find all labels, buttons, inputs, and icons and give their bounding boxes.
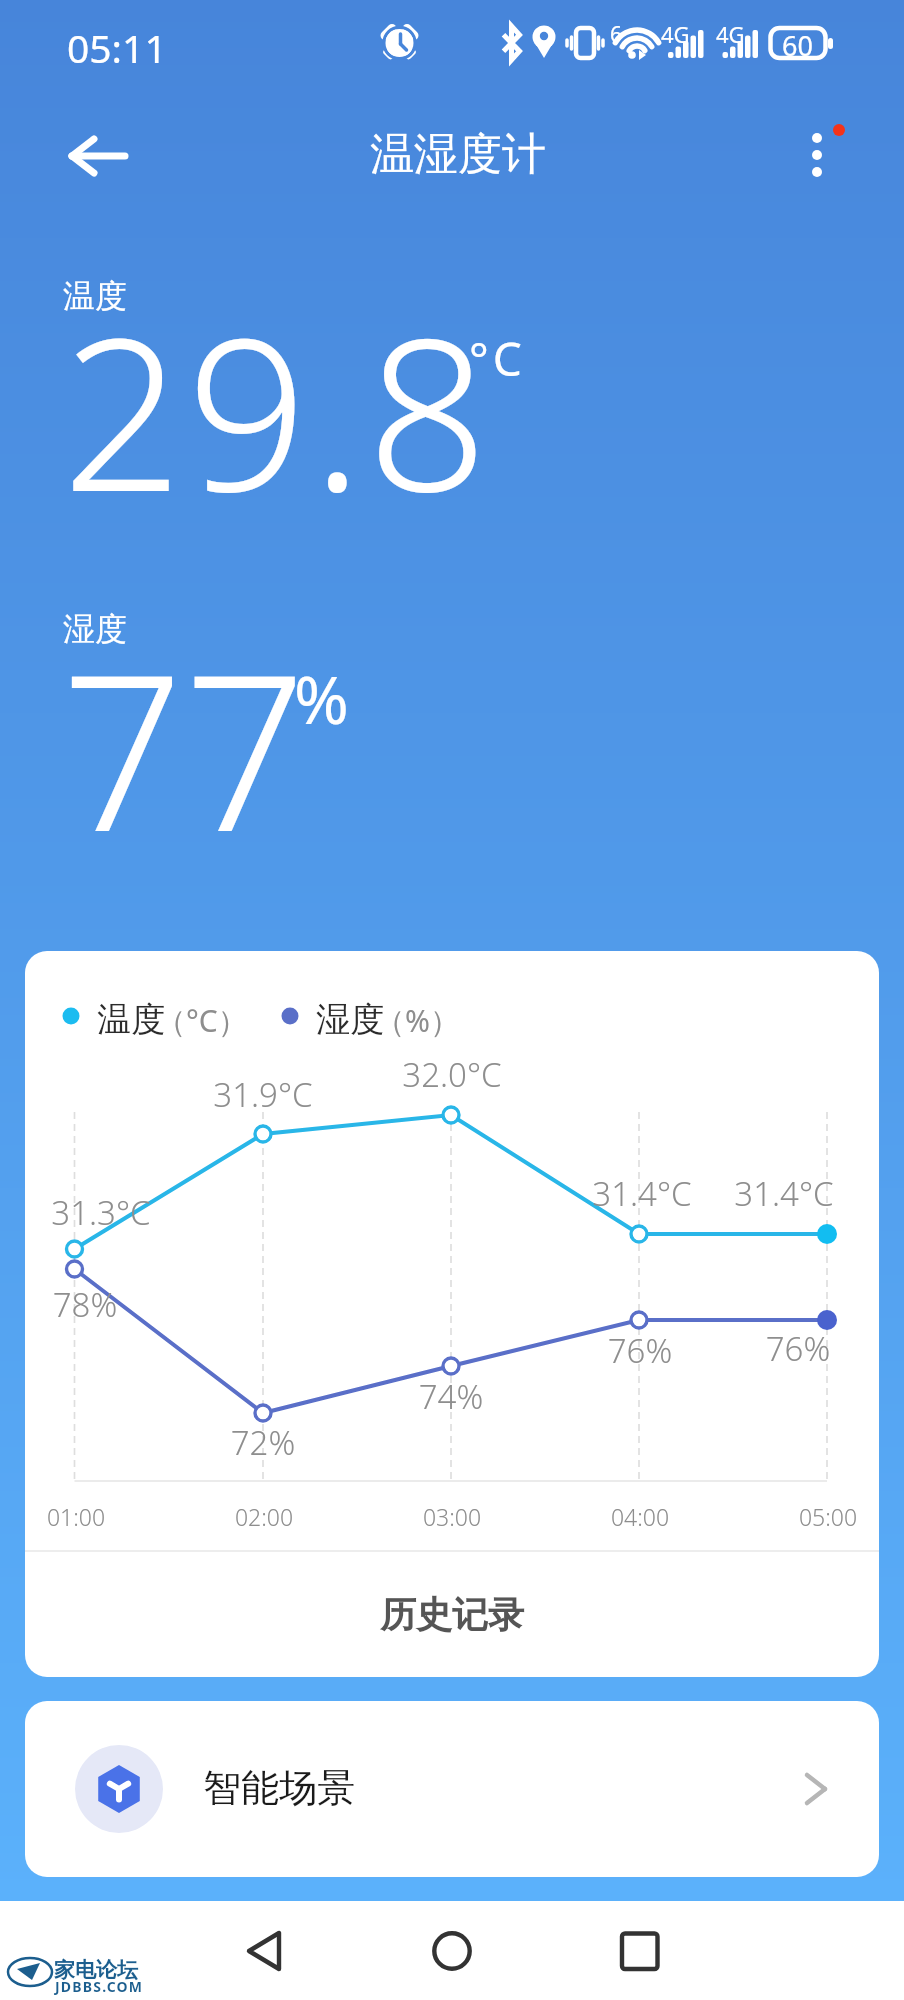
staticText: （°C）	[156, 1000, 248, 1041]
staticText: 温湿度计	[6, 127, 904, 182]
staticText: 77	[61, 601, 307, 894]
staticText: （%）	[375, 1000, 460, 1041]
staticText: 32.0°C	[342, 1052, 562, 1097]
staticText: %	[294, 653, 349, 743]
button[interactable]: Back	[225, 1901, 305, 2000]
staticText: 05:00	[718, 1501, 879, 1532]
button[interactable]: Recents	[600, 1901, 680, 2000]
staticText: 76%	[530, 1328, 750, 1373]
staticText: 04:00	[530, 1501, 750, 1532]
staticText: 05:11	[67, 21, 167, 74]
staticText: 智能场景	[203, 1764, 355, 1812]
staticText: 31.9°C	[153, 1072, 373, 1117]
staticText: 湿度	[316, 998, 384, 1041]
staticText: 74%	[341, 1374, 561, 1419]
staticText: 60	[782, 27, 813, 64]
staticText: 4G	[716, 19, 745, 49]
staticText: 31.4°C	[674, 1171, 879, 1216]
staticText: 76%	[688, 1326, 879, 1371]
button[interactable]: 历史记录	[25, 1552, 879, 1677]
staticText: 03:00	[342, 1501, 562, 1532]
staticText: 6	[610, 20, 623, 49]
staticText: 01:00	[25, 1501, 186, 1532]
staticText: 家电论坛	[54, 1957, 138, 1983]
staticText: °C	[469, 327, 526, 390]
staticText: 温度	[63, 276, 127, 316]
staticText: 29.8	[62, 265, 493, 552]
staticText: JDBBS.COM	[55, 1977, 144, 1996]
staticText: 31.3°C	[25, 1190, 211, 1235]
staticText: 历史记录	[380, 1592, 524, 1637]
staticText: 4G	[661, 19, 690, 49]
button[interactable]: Back	[56, 120, 128, 192]
button[interactable]: Home	[412, 1901, 492, 2000]
staticText: 湿度	[63, 609, 127, 649]
staticText: 72%	[153, 1420, 373, 1465]
staticText: 78%	[25, 1282, 195, 1327]
button[interactable]: 智能场景	[25, 1701, 879, 1877]
staticText: 31.4°C	[532, 1171, 752, 1216]
staticText: 02:00	[154, 1501, 374, 1532]
button[interactable]: More options	[790, 118, 862, 190]
staticText: 温度	[97, 998, 165, 1041]
